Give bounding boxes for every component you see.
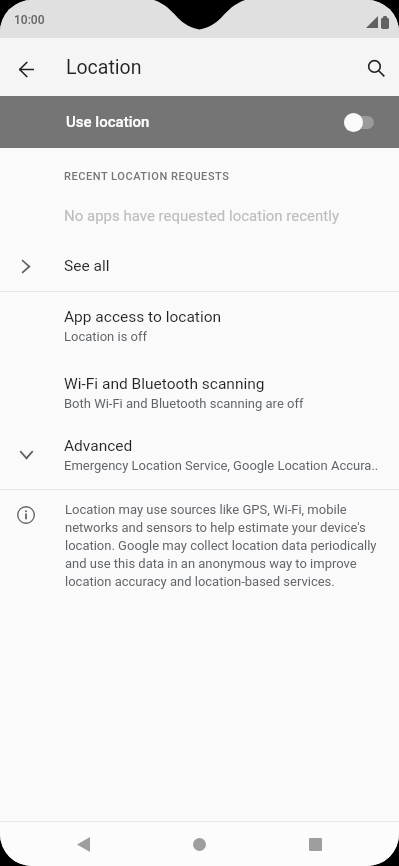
- button[interactable]: Back: [6, 47, 46, 87]
- staticText: Wi-Fi and Bluetooth scanning: [64, 375, 265, 393]
- staticText: Both Wi-Fi and Bluetooth scanning are of…: [64, 396, 304, 411]
- staticText: Use location: [66, 113, 150, 131]
- staticText: RECENT LOCATION REQUESTS: [64, 170, 230, 183]
- staticText: Emergency Location Service, Google Locat…: [64, 458, 379, 473]
- staticText: App access to location: [64, 308, 222, 326]
- button[interactable]: Search: [356, 47, 396, 87]
- staticText: Location: [66, 56, 142, 79]
- staticText: Advanced: [64, 437, 133, 455]
- staticText: See all: [64, 257, 110, 275]
- staticText: No apps have requested location recently: [64, 207, 339, 225]
- button[interactable]: App access to location: [0, 304, 399, 352]
- button[interactable]: Home: [178, 822, 221, 866]
- button[interactable]: Use location: [0, 96, 399, 148]
- button[interactable]: Wi-Fi and Bluetooth scanning: [0, 371, 399, 419]
- staticText: Location may use sources like GPS, Wi-Fi…: [65, 502, 387, 589]
- button[interactable]: Advanced: [0, 433, 399, 481]
- button[interactable]: Recents: [294, 822, 337, 866]
- button[interactable]: See all: [0, 241, 399, 291]
- button[interactable]: Back: [62, 822, 105, 866]
- staticText: Location is off: [64, 329, 148, 344]
- staticText: 10:00: [14, 13, 45, 27]
